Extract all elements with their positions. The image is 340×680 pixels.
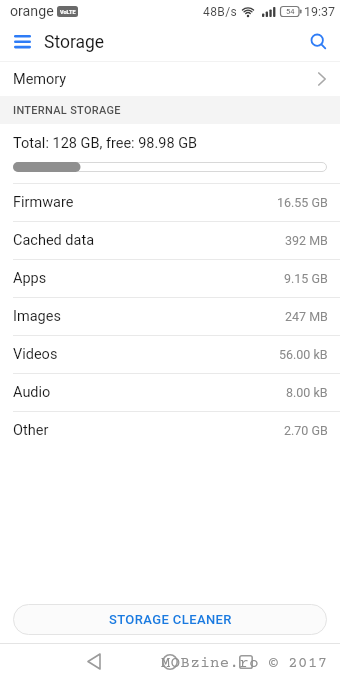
button[interactable]: Other (0, 411, 340, 449)
button[interactable] (225, 643, 266, 680)
button[interactable]: Cached data (0, 221, 340, 259)
staticText: 48B/s (203, 5, 238, 19)
staticText: 247 MB (285, 309, 328, 324)
staticText: 9.15 GB (284, 271, 328, 286)
staticText: 392 MB (285, 233, 328, 248)
button[interactable]: Firmware (0, 183, 340, 221)
staticText: INTERNAL STORAGE (13, 104, 121, 117)
staticText: MOBzine.ro © 2017 (161, 655, 328, 672)
staticText: Other (13, 422, 49, 439)
staticText: 8.00 kB (286, 385, 328, 400)
staticText: Cached data (13, 232, 95, 249)
button[interactable]: Memory (0, 62, 340, 96)
button[interactable]: Videos (0, 335, 340, 373)
staticText: Total: 128 GB, free: 98.98 GB (13, 135, 198, 152)
staticText: Memory (13, 71, 67, 88)
staticText: Images (13, 308, 61, 325)
staticText: Videos (13, 346, 58, 363)
button[interactable] (150, 643, 190, 680)
button[interactable]: STORAGE CLEANER (13, 604, 327, 635)
staticText: 16.55 GB (277, 195, 328, 210)
button[interactable] (73, 643, 114, 680)
button[interactable] (0, 22, 44, 62)
button[interactable]: Apps (0, 259, 340, 297)
button[interactable] (298, 22, 340, 62)
staticText: Firmware (13, 194, 74, 211)
staticText: 56.00 kB (279, 347, 328, 362)
staticText: Apps (13, 270, 47, 287)
staticText: 19:37 (304, 4, 336, 19)
staticText: Storage (44, 32, 105, 53)
staticText: STORAGE CLEANER (109, 612, 232, 627)
staticText: 54 (286, 7, 295, 16)
button[interactable]: Audio (0, 373, 340, 411)
staticText: VoLTE (60, 9, 76, 15)
staticText: 2.70 GB (284, 423, 328, 438)
button[interactable]: Images (0, 297, 340, 335)
staticText: Audio (13, 384, 51, 401)
staticText: orange (10, 3, 54, 20)
